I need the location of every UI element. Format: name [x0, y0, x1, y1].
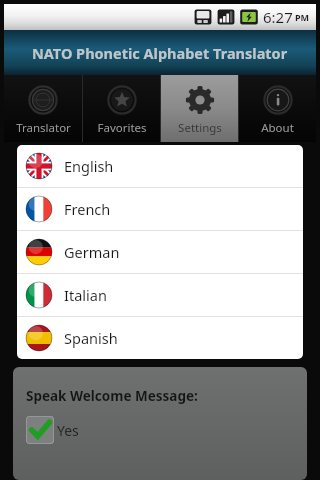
staticText: NATO Phonetic Alphabet Translator — [32, 43, 288, 63]
button[interactable]: Yes — [26, 416, 79, 444]
button[interactable]: Translator — [4, 75, 82, 142]
staticText: About — [261, 120, 294, 136]
staticText: Yes — [57, 421, 79, 440]
staticText: PM — [295, 11, 310, 23]
staticText: Translator — [16, 120, 71, 136]
button[interactable]: About — [239, 75, 316, 142]
staticText: Speak Welcome Message: — [26, 387, 198, 405]
staticText: Settings — [178, 120, 222, 136]
button[interactable]: Settings — [161, 75, 238, 142]
button[interactable]: Spanish — [17, 317, 303, 359]
button[interactable]: French — [17, 188, 303, 230]
staticText: English — [64, 156, 114, 176]
staticText: 6:27 — [263, 7, 293, 27]
staticText: Italian — [64, 285, 107, 305]
button[interactable]: Favorites — [83, 75, 160, 142]
button[interactable]: English — [17, 145, 303, 187]
staticText: French — [64, 199, 111, 219]
button[interactable]: German — [17, 231, 303, 273]
staticText: Spanish — [64, 328, 118, 348]
button[interactable]: Italian — [17, 274, 303, 316]
staticText: Favorites — [97, 120, 147, 136]
staticText: German — [64, 242, 120, 262]
